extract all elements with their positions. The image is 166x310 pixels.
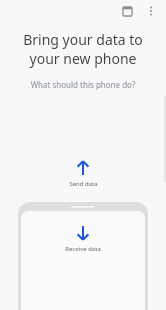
staticText: Bring your data to your new phone	[10, 30, 156, 68]
staticText: Receive data	[65, 245, 101, 253]
staticText: Send data	[69, 180, 98, 188]
button[interactable]: More options	[140, 0, 162, 22]
button[interactable]: Send data	[0, 160, 166, 188]
button[interactable]: Help	[116, 0, 138, 22]
button[interactable]: Receive data	[18, 202, 148, 310]
staticText: What should this phone do?	[10, 79, 156, 90]
